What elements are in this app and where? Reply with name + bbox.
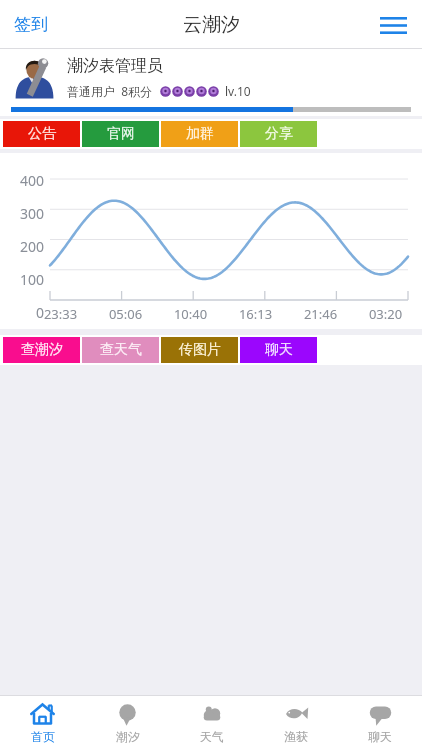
staticText: 潮汐: [116, 729, 140, 744]
staticText: 天气: [200, 729, 224, 744]
button[interactable]: 潮汐: [85, 698, 170, 748]
staticText: 03:20: [353, 305, 418, 323]
staticText: lv.10: [225, 83, 251, 99]
staticText: 300: [6, 204, 44, 223]
button[interactable]: 潮汐表管理员: [0, 49, 422, 102]
button[interactable]: 查天气: [82, 337, 159, 363]
staticText: 21:46: [288, 305, 353, 323]
staticText: 加群: [186, 125, 214, 143]
staticText: 普通用户 8积分: [67, 83, 153, 99]
button[interactable]: 公告: [3, 121, 80, 147]
staticText: 0: [6, 303, 44, 322]
button[interactable]: 渔获: [254, 698, 338, 748]
staticText: 23:33: [28, 305, 93, 323]
button[interactable]: 首页: [0, 698, 85, 748]
staticText: 签到: [14, 14, 48, 35]
button[interactable]: 天气: [170, 698, 254, 748]
button[interactable]: 分享: [240, 121, 317, 147]
staticText: 聊天: [265, 341, 293, 359]
button[interactable]: 传图片: [161, 337, 238, 363]
staticText: 云潮汐: [183, 13, 240, 37]
button[interactable]: 签到: [8, 6, 54, 43]
staticText: 400: [6, 171, 44, 190]
staticText: 分享: [265, 125, 293, 143]
button[interactable]: 聊天: [338, 698, 422, 748]
staticText: 潮汐表管理员: [67, 56, 163, 76]
staticText: 传图片: [179, 341, 221, 359]
button[interactable]: 加群: [161, 121, 238, 147]
staticText: 10:40: [158, 305, 223, 323]
staticText: 16:13: [223, 305, 288, 323]
staticText: 查天气: [100, 341, 142, 359]
staticText: 渔获: [284, 729, 308, 744]
button[interactable]: Menu: [374, 6, 412, 44]
staticText: 公告: [28, 125, 56, 143]
staticText: 05:06: [93, 305, 158, 323]
staticText: 100: [6, 270, 44, 289]
staticText: 查潮汐: [21, 341, 63, 359]
staticText: 200: [6, 237, 44, 256]
staticText: 聊天: [368, 729, 392, 744]
staticText: 官网: [107, 125, 135, 143]
staticText: 首页: [31, 729, 55, 744]
button[interactable]: 官网: [82, 121, 159, 147]
button[interactable]: 查潮汐: [3, 337, 80, 363]
button[interactable]: 聊天: [240, 337, 317, 363]
